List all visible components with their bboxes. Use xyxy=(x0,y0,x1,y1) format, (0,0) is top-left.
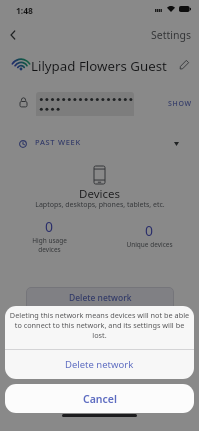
button[interactable]: Delete network xyxy=(5,350,194,379)
staticText: Laptops, desktops, phones, tablets, etc. xyxy=(35,200,165,210)
staticText: 0 xyxy=(145,221,154,240)
staticText: Devices xyxy=(79,186,120,202)
button[interactable]: Settings xyxy=(151,28,191,42)
staticText: Lilypad Flowers Guest xyxy=(31,57,167,75)
staticText: PAST WEEK xyxy=(35,137,81,147)
button[interactable]: Delete network xyxy=(26,287,174,321)
button[interactable]: PAST WEEK xyxy=(0,132,199,152)
button[interactable]: Back xyxy=(3,25,23,45)
staticText: Delete network xyxy=(69,292,132,304)
staticText: High usage devices xyxy=(32,236,67,253)
staticText: Unique devices xyxy=(126,240,173,249)
button[interactable]: Edit name xyxy=(177,57,191,71)
button[interactable]: SHOW xyxy=(168,99,192,109)
staticText: Deleting this network means devices will… xyxy=(5,310,194,340)
staticText: Delete network xyxy=(65,358,134,371)
staticText: 0 xyxy=(45,217,54,236)
button[interactable]: Cancel xyxy=(5,384,194,413)
staticText: Cancel xyxy=(83,392,117,406)
staticText: 1:48 xyxy=(16,5,33,17)
